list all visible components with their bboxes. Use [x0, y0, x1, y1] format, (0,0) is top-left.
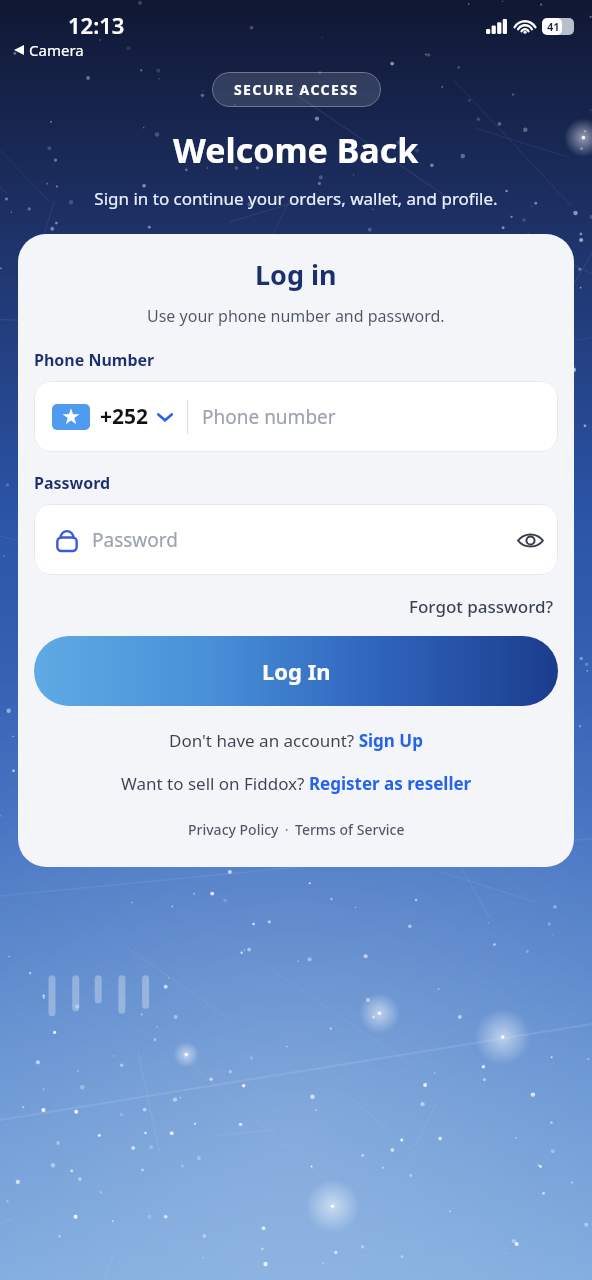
- staticText: 41: [547, 19, 560, 34]
- button[interactable]: Terms of Service: [293, 818, 407, 841]
- staticText: Welcome Back: [173, 127, 419, 173]
- button[interactable]: SECURE ACCESS: [212, 72, 381, 107]
- button[interactable]: +252: [34, 381, 558, 452]
- button[interactable]: Log In: [34, 636, 558, 706]
- staticText: Privacy Policy: [188, 820, 279, 839]
- staticText: Use your phone number and password.: [147, 305, 445, 327]
- button[interactable]: Don't have an account? Sign Up: [166, 726, 426, 755]
- button[interactable]: Want to sell on Fiddox? Register as rese…: [118, 769, 475, 798]
- staticText: Phone Number: [34, 349, 155, 371]
- button[interactable]: Show password: [508, 518, 552, 562]
- staticText: Don't have an account? Sign Up: [169, 729, 423, 752]
- staticText: SECURE ACCESS: [234, 80, 359, 99]
- button[interactable]: Forgot password?: [405, 591, 558, 622]
- staticText: Sign in to continue your orders, wallet,…: [94, 187, 498, 210]
- staticText: Log in: [255, 256, 337, 293]
- staticText: Password: [34, 472, 111, 494]
- staticText: 12:13: [68, 10, 125, 40]
- staticText: Camera: [29, 40, 84, 60]
- staticText: +252: [100, 402, 149, 431]
- button[interactable]: Back to Camera: [14, 40, 84, 60]
- button[interactable]: Privacy Policy: [186, 818, 281, 841]
- staticText: Terms of Service: [295, 820, 405, 839]
- staticText: Want to sell on Fiddox? Register as rese…: [121, 772, 472, 795]
- staticText: Password: [92, 527, 508, 553]
- staticText: Forgot password?: [409, 595, 554, 618]
- staticText: Phone number: [202, 404, 336, 430]
- staticText: Log In: [262, 656, 331, 686]
- button[interactable]: Password: [34, 504, 558, 575]
- staticText: ·: [281, 820, 293, 839]
